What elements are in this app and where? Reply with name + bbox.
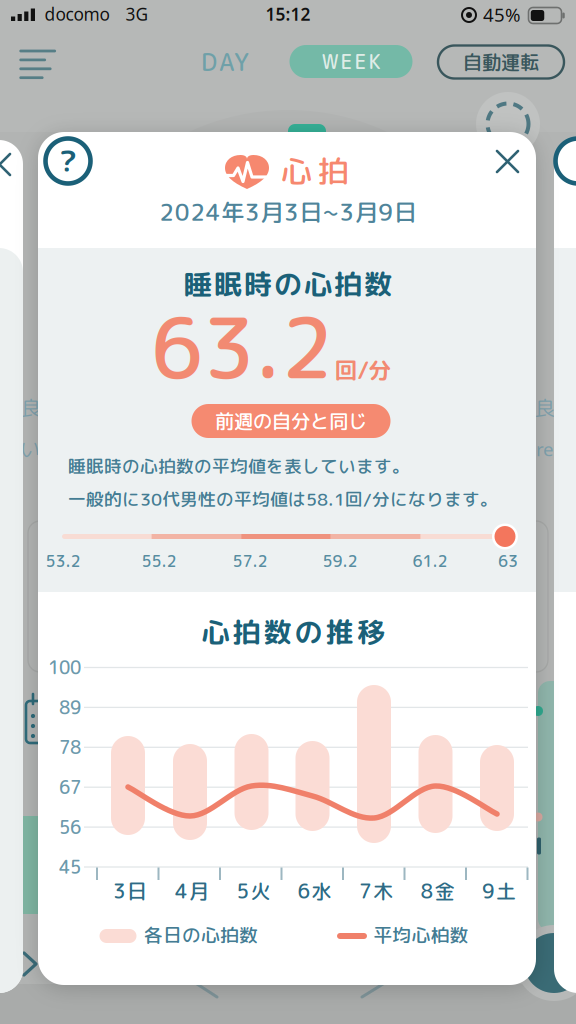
staticText: 53.2 [45,550,80,572]
staticText: 3日 [113,877,147,905]
staticText: 55.2 [141,550,176,572]
staticText: 78 [59,735,81,760]
staticText: DAY [201,45,249,79]
staticText: 15:12 [265,2,310,25]
staticText: ? [59,141,77,181]
staticText: docomo [44,2,109,25]
staticText: 6水 [297,877,331,905]
staticText: WEEK [321,47,380,75]
staticText: 56 [59,814,81,840]
staticText: 回/分 [334,354,391,386]
staticText: 3G [125,2,148,25]
staticText: 平均心柏数 [373,922,468,948]
button[interactable]: Help [45,138,90,183]
button[interactable]: DAY [185,44,265,80]
staticText: 4月 [175,877,209,905]
staticText: 良 [535,394,555,422]
staticText: 各日の心拍数 [144,922,258,948]
staticText: 自動運転 [463,48,539,75]
staticText: 8金 [420,877,454,905]
staticText: 45 [59,854,81,879]
staticText: 89 [59,695,81,720]
button[interactable]: Close [485,139,529,183]
button[interactable]: WEEK [289,45,412,78]
staticText: 5火 [236,877,270,905]
staticText: 2024年3月3日~3月9日 [159,196,417,228]
button[interactable]: Menu [18,48,58,82]
staticText: 一般的に30代男性の平均値は58.1回/分になります。 [68,487,498,511]
staticText: 63 [498,550,518,572]
staticText: 前週の自分と同じ [215,407,367,434]
staticText: 61.2 [412,550,447,572]
staticText: 7木 [359,877,393,905]
button[interactable]: 自動運転 [438,45,564,78]
staticText: 良 [21,394,41,422]
staticText: 45% [483,2,521,27]
staticText: re [536,437,554,461]
staticText: 心拍 [281,150,349,192]
staticText: 睡眠時の心拍数 [184,264,392,304]
staticText: い [20,435,40,463]
button[interactable]: 前週の自分と同じ [191,404,390,438]
staticText: 9土 [482,877,516,905]
staticText: 心拍数の推移 [201,612,384,652]
staticText: 59.2 [322,550,357,572]
staticText: 67 [59,775,81,800]
staticText: 睡眠時の心拍数の平均値を表しています。 [68,454,410,478]
staticText: 63.2 [151,289,333,405]
staticText: 57.2 [232,550,267,572]
staticText: 100 [48,655,81,680]
